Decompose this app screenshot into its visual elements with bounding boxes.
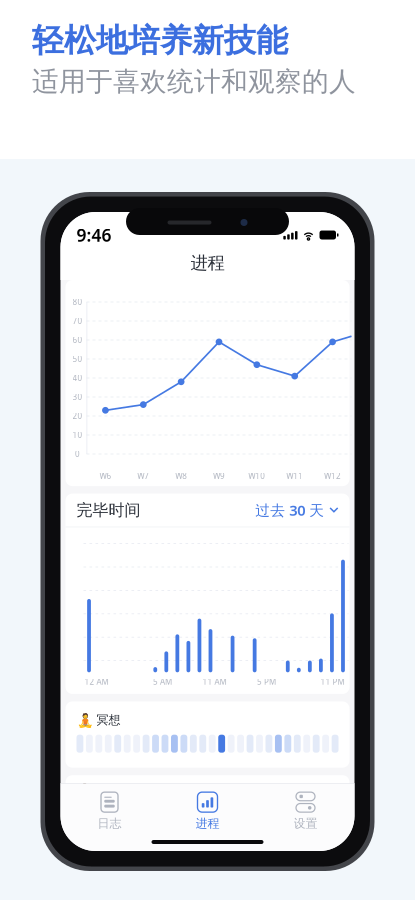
staticText: 40 (72, 373, 82, 383)
staticText: 12 AM (84, 676, 108, 687)
staticText: 🏃 (76, 783, 93, 798)
staticText: W11 (286, 470, 303, 481)
staticText: 设置 (293, 816, 317, 831)
staticText: W9 (213, 470, 225, 481)
staticText: 50 (72, 354, 82, 364)
staticText: 11 AM (202, 676, 226, 687)
staticText: W6 (99, 470, 111, 481)
button[interactable]: 进程 (158, 789, 256, 833)
staticText: 11 PM (320, 676, 344, 687)
button[interactable]: 日志 (60, 789, 158, 833)
staticText: 适用于喜欢统计和观察的人 (32, 65, 356, 98)
staticText: 5 AM (153, 676, 172, 687)
staticText: 进程 (190, 252, 224, 274)
staticText: 9:46 (76, 223, 111, 246)
staticText: 0 (75, 449, 80, 459)
button[interactable]: 过去 30 天 (255, 500, 338, 520)
staticText: W8 (175, 470, 187, 481)
button[interactable]: 设置 (256, 789, 354, 833)
staticText: 70 (72, 316, 82, 326)
staticText: 5 PM (257, 676, 276, 687)
staticText: W7 (137, 470, 149, 481)
staticText: 20 (72, 411, 82, 421)
staticText: W10 (248, 470, 265, 481)
staticText: 日志 (97, 816, 121, 831)
staticText: 80 (72, 297, 82, 307)
staticText: 60 (72, 335, 82, 345)
staticText: 过去 30 天 (255, 500, 324, 520)
staticText: 30 (72, 392, 82, 402)
staticText: 完毕时间 (76, 500, 140, 520)
staticText: 进程 (195, 816, 219, 831)
staticText: W12 (324, 470, 341, 481)
staticText: 冥想 (96, 713, 120, 727)
staticText: 轻松地培养新技能 (32, 21, 288, 60)
staticText: 跑步 (96, 783, 120, 798)
staticText: 10 (72, 430, 82, 440)
staticText: 🧘 (76, 712, 93, 728)
